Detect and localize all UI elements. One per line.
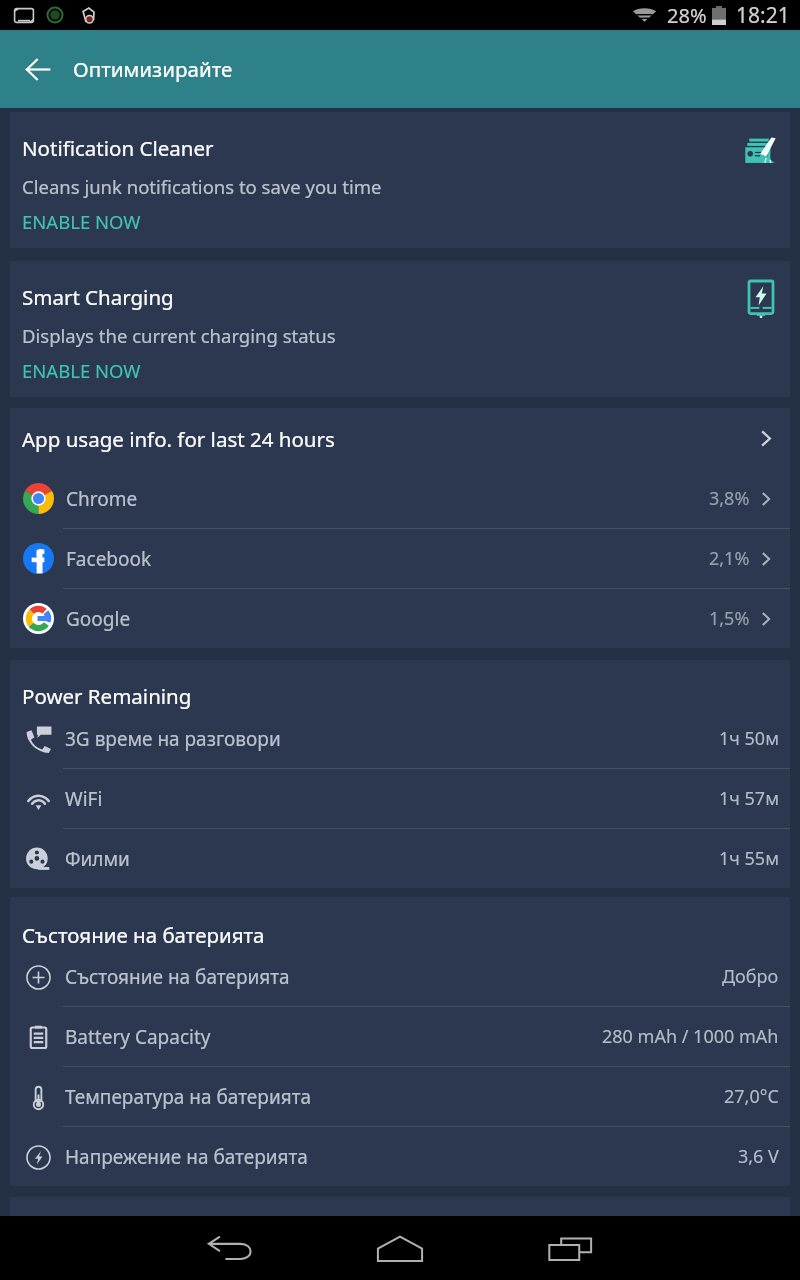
staticText: Оптимизирайте xyxy=(73,55,233,83)
button[interactable]: Напрежение на батерията xyxy=(10,1127,790,1186)
staticText: 1ч 57м xyxy=(719,786,779,811)
staticText: 3,6 V xyxy=(738,1144,779,1169)
button[interactable]: App usage info. for last 24 hours xyxy=(10,408,790,469)
button[interactable]: Back xyxy=(145,1216,315,1280)
staticText: Google xyxy=(66,606,131,632)
staticText: 3,8% xyxy=(709,486,750,511)
staticText: Добро xyxy=(722,964,779,989)
button[interactable]: Температура на батерията xyxy=(10,1067,790,1126)
staticText: 1ч 50м xyxy=(719,726,779,751)
staticText: 27,0°C xyxy=(724,1084,779,1109)
staticText: Battery Capacity xyxy=(65,1024,211,1050)
staticText: WiFi xyxy=(65,786,103,812)
staticText: App usage info. for last 24 hours xyxy=(22,425,335,453)
staticText: Facebook xyxy=(66,546,152,572)
button[interactable]: Facebook xyxy=(10,529,790,588)
button[interactable]: Notification Cleaner xyxy=(10,112,790,248)
button[interactable]: Back xyxy=(14,45,62,93)
button[interactable]: Battery Capacity xyxy=(10,1007,790,1066)
button[interactable]: Home xyxy=(315,1216,485,1280)
staticText: 18:21 xyxy=(736,1,790,30)
button[interactable]: WiFi xyxy=(10,769,790,828)
staticText: Cleans junk notifications to save you ti… xyxy=(22,174,382,199)
staticText: Power Remaining xyxy=(22,682,192,709)
button[interactable]: Google xyxy=(10,589,790,648)
button[interactable]: Recent apps xyxy=(485,1216,655,1280)
staticText: ENABLE NOW xyxy=(22,358,141,383)
staticText: 1ч 55м xyxy=(719,846,779,871)
button[interactable]: ENABLE NOW xyxy=(22,209,141,234)
staticText: 3G време на разговори xyxy=(65,726,281,752)
button[interactable]: 3G време на разговори xyxy=(10,709,790,768)
button[interactable]: Smart Charging xyxy=(10,261,790,397)
staticText: 1,5% xyxy=(709,606,750,631)
staticText: ENABLE NOW xyxy=(22,209,141,234)
staticText: Състояние на батерията xyxy=(65,964,290,990)
staticText: Филми xyxy=(65,846,130,872)
staticText: Chrome xyxy=(66,486,138,512)
staticText: 28% xyxy=(667,2,707,29)
staticText: Smart Charging xyxy=(22,283,174,311)
staticText: Напрежение на батерията xyxy=(65,1144,308,1170)
button[interactable]: Филми xyxy=(10,829,790,888)
button[interactable]: Chrome xyxy=(10,469,790,528)
staticText: Състояние на батерията xyxy=(22,921,265,947)
staticText: 2,1% xyxy=(709,546,750,571)
button[interactable]: ENABLE NOW xyxy=(22,358,141,383)
button[interactable]: Състояние на батерията xyxy=(10,947,790,1006)
staticText: Displays the current charging status xyxy=(22,323,336,348)
staticText: 280 mAh / 1000 mAh xyxy=(602,1024,779,1049)
staticText: Температура на батерията xyxy=(65,1084,312,1110)
staticText: Notification Cleaner xyxy=(22,134,214,162)
